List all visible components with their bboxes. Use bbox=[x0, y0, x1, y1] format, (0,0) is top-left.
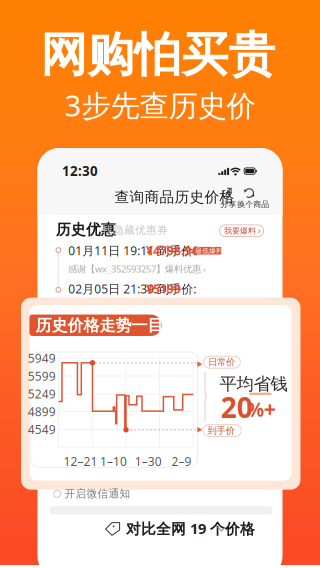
button[interactable]: 对比全网 19 个价格 bbox=[0, 0, 320, 568]
staticText: + bbox=[264, 394, 276, 423]
staticText: 12–21 bbox=[64, 453, 98, 469]
staticText: 对比全网 19 个价格 bbox=[126, 519, 255, 538]
staticText: 网购怕买贵 bbox=[40, 26, 275, 84]
staticText: 5949 bbox=[28, 350, 56, 366]
staticText: 最低爆料 bbox=[195, 247, 223, 255]
staticText: 2–9 bbox=[172, 453, 192, 469]
staticText: 分享 bbox=[220, 199, 236, 209]
button[interactable]: 分享 bbox=[0, 0, 320, 568]
staticText: 01月11日 19:11 到手价: bbox=[68, 243, 196, 258]
staticText: 20 bbox=[221, 389, 253, 426]
staticText: 5599 bbox=[28, 368, 56, 384]
staticText: 02月05日 21:39 到手价: bbox=[68, 281, 196, 297]
staticText: 到手价 bbox=[207, 425, 234, 436]
staticText: 历史价格走势一目了然 bbox=[35, 316, 195, 335]
staticText: 找隐藏优惠券 bbox=[102, 224, 168, 237]
staticText: 感谢【wx_352593257】爆料优惠 › bbox=[68, 263, 206, 275]
staticText: 开启微信通知 bbox=[64, 487, 130, 500]
staticText: 换个商品 bbox=[237, 199, 269, 209]
button[interactable]: 换个商品 bbox=[0, 0, 320, 568]
staticText: 5249 bbox=[28, 386, 56, 402]
staticText: 我要爆料 › bbox=[224, 225, 260, 236]
staticText: 4899 bbox=[28, 404, 56, 419]
staticText: 历史优惠 bbox=[56, 221, 116, 239]
staticText: 查询商品历史价格 bbox=[115, 188, 235, 206]
staticText: 1–30 bbox=[135, 453, 162, 469]
staticText: 4549 bbox=[28, 421, 56, 437]
staticText: 1–10 bbox=[100, 453, 127, 469]
staticText: 3步先查历史价 bbox=[64, 85, 255, 124]
staticText: 日常价 bbox=[208, 356, 235, 368]
button[interactable]: 我要爆料 › bbox=[0, 0, 320, 568]
staticText: 平均省钱 bbox=[219, 373, 287, 395]
staticText: % bbox=[247, 397, 264, 422]
staticText: 12:30 bbox=[62, 162, 98, 180]
button[interactable]: Back bbox=[0, 0, 320, 568]
staticText: ¥5199 bbox=[146, 281, 181, 297]
staticText: ¥4798.94 bbox=[146, 243, 198, 258]
